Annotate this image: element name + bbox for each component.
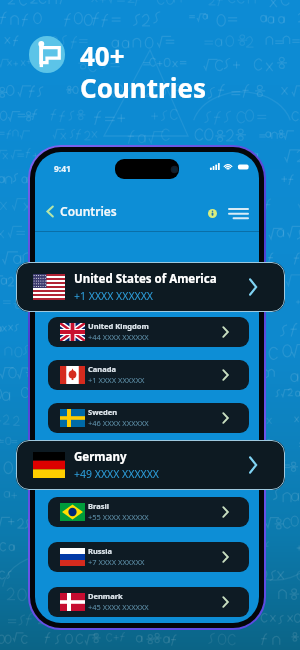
- button[interactable]: United Kingdom: [48, 317, 249, 347]
- staticText: 9:41: [54, 163, 71, 175]
- staticText: +45 XXXX XXXXXX: [88, 602, 149, 612]
- staticText: Brasil: [88, 501, 109, 511]
- staticText: +49 XXXX XXXXXX: [74, 467, 160, 481]
- button[interactable]: Sweden: [48, 403, 249, 433]
- button[interactable]: Menu: [229, 206, 248, 220]
- staticText: +1 XXXX XXXXXX: [88, 375, 145, 385]
- button[interactable]: United States of America: [16, 262, 285, 312]
- staticText: 40+: [80, 38, 125, 73]
- button[interactable]: Russia: [48, 542, 249, 572]
- staticText: United Kingdom: [88, 321, 149, 331]
- staticText: Countries: [80, 70, 206, 105]
- staticText: Russia: [88, 546, 113, 556]
- staticText: Germany: [74, 449, 127, 465]
- button[interactable]: Info: [208, 209, 217, 218]
- staticText: +7 XXXX XXXXXX: [88, 557, 145, 567]
- staticText: +55 XXXX XXXXXX: [88, 512, 149, 522]
- button[interactable]: Canada: [48, 360, 249, 390]
- staticText: +1 XXXX XXXXXX: [74, 289, 154, 303]
- staticText: Denmark: [88, 591, 123, 601]
- staticText: Sweden: [88, 407, 118, 417]
- staticText: Canada: [88, 364, 116, 374]
- button[interactable]: Germany: [16, 440, 285, 490]
- staticText: Countries: [60, 203, 117, 219]
- button[interactable]: Denmark: [48, 587, 249, 617]
- staticText: +46 XXXX XXXXXX: [88, 418, 149, 428]
- staticText: +44 XXXX XXXXXX: [88, 332, 149, 342]
- staticText: United States of America: [74, 271, 217, 287]
- button[interactable]: Brasil: [48, 497, 249, 527]
- button[interactable]: Countries: [43, 199, 119, 223]
